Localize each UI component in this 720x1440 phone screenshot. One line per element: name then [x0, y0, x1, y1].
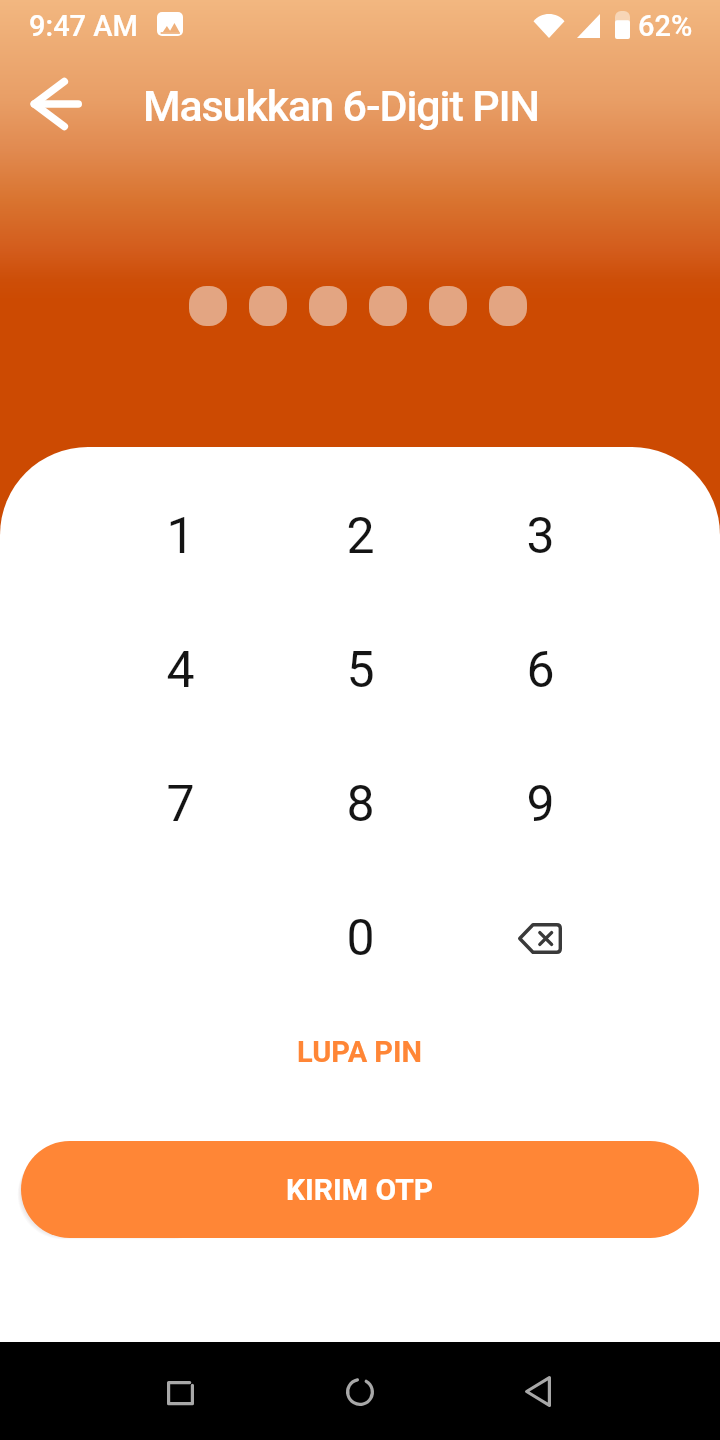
- button[interactable]: 4: [120, 620, 240, 720]
- button[interactable]: Recents: [140, 1354, 220, 1434]
- staticText: 4: [166, 641, 195, 700]
- staticText: LUPA PIN: [297, 1035, 423, 1069]
- button[interactable]: 7: [120, 754, 240, 854]
- button[interactable]: Home: [320, 1352, 400, 1432]
- staticText: KIRIM OTP: [286, 1172, 434, 1207]
- button[interactable]: Back: [498, 1351, 578, 1431]
- button[interactable]: 0: [300, 888, 420, 988]
- staticText: 7: [166, 775, 195, 834]
- button[interactable]: 9: [480, 754, 600, 854]
- staticText: 9:47 AM: [29, 9, 138, 43]
- button[interactable]: KIRIM OTP: [21, 1141, 699, 1238]
- staticText: Masukkan 6-Digit PIN: [143, 81, 540, 131]
- staticText: 2: [346, 507, 375, 566]
- button[interactable]: Backspace: [480, 888, 600, 988]
- button[interactable]: LUPA PIN: [273, 1021, 447, 1083]
- staticText: 6: [526, 641, 555, 700]
- staticText: 0: [346, 909, 375, 968]
- button[interactable]: 6: [480, 620, 600, 720]
- button[interactable]: 5: [300, 620, 420, 720]
- staticText: 3: [526, 507, 555, 566]
- staticText: 1: [166, 507, 195, 566]
- button[interactable]: 1: [120, 486, 240, 586]
- staticText: 62%: [638, 9, 693, 43]
- button[interactable]: 3: [480, 486, 600, 586]
- button[interactable]: Back: [12, 60, 100, 148]
- button[interactable]: 8: [300, 754, 420, 854]
- staticText: 8: [346, 775, 375, 834]
- button[interactable]: 2: [300, 486, 420, 586]
- staticText: 9: [526, 775, 555, 834]
- staticText: 5: [346, 641, 375, 700]
